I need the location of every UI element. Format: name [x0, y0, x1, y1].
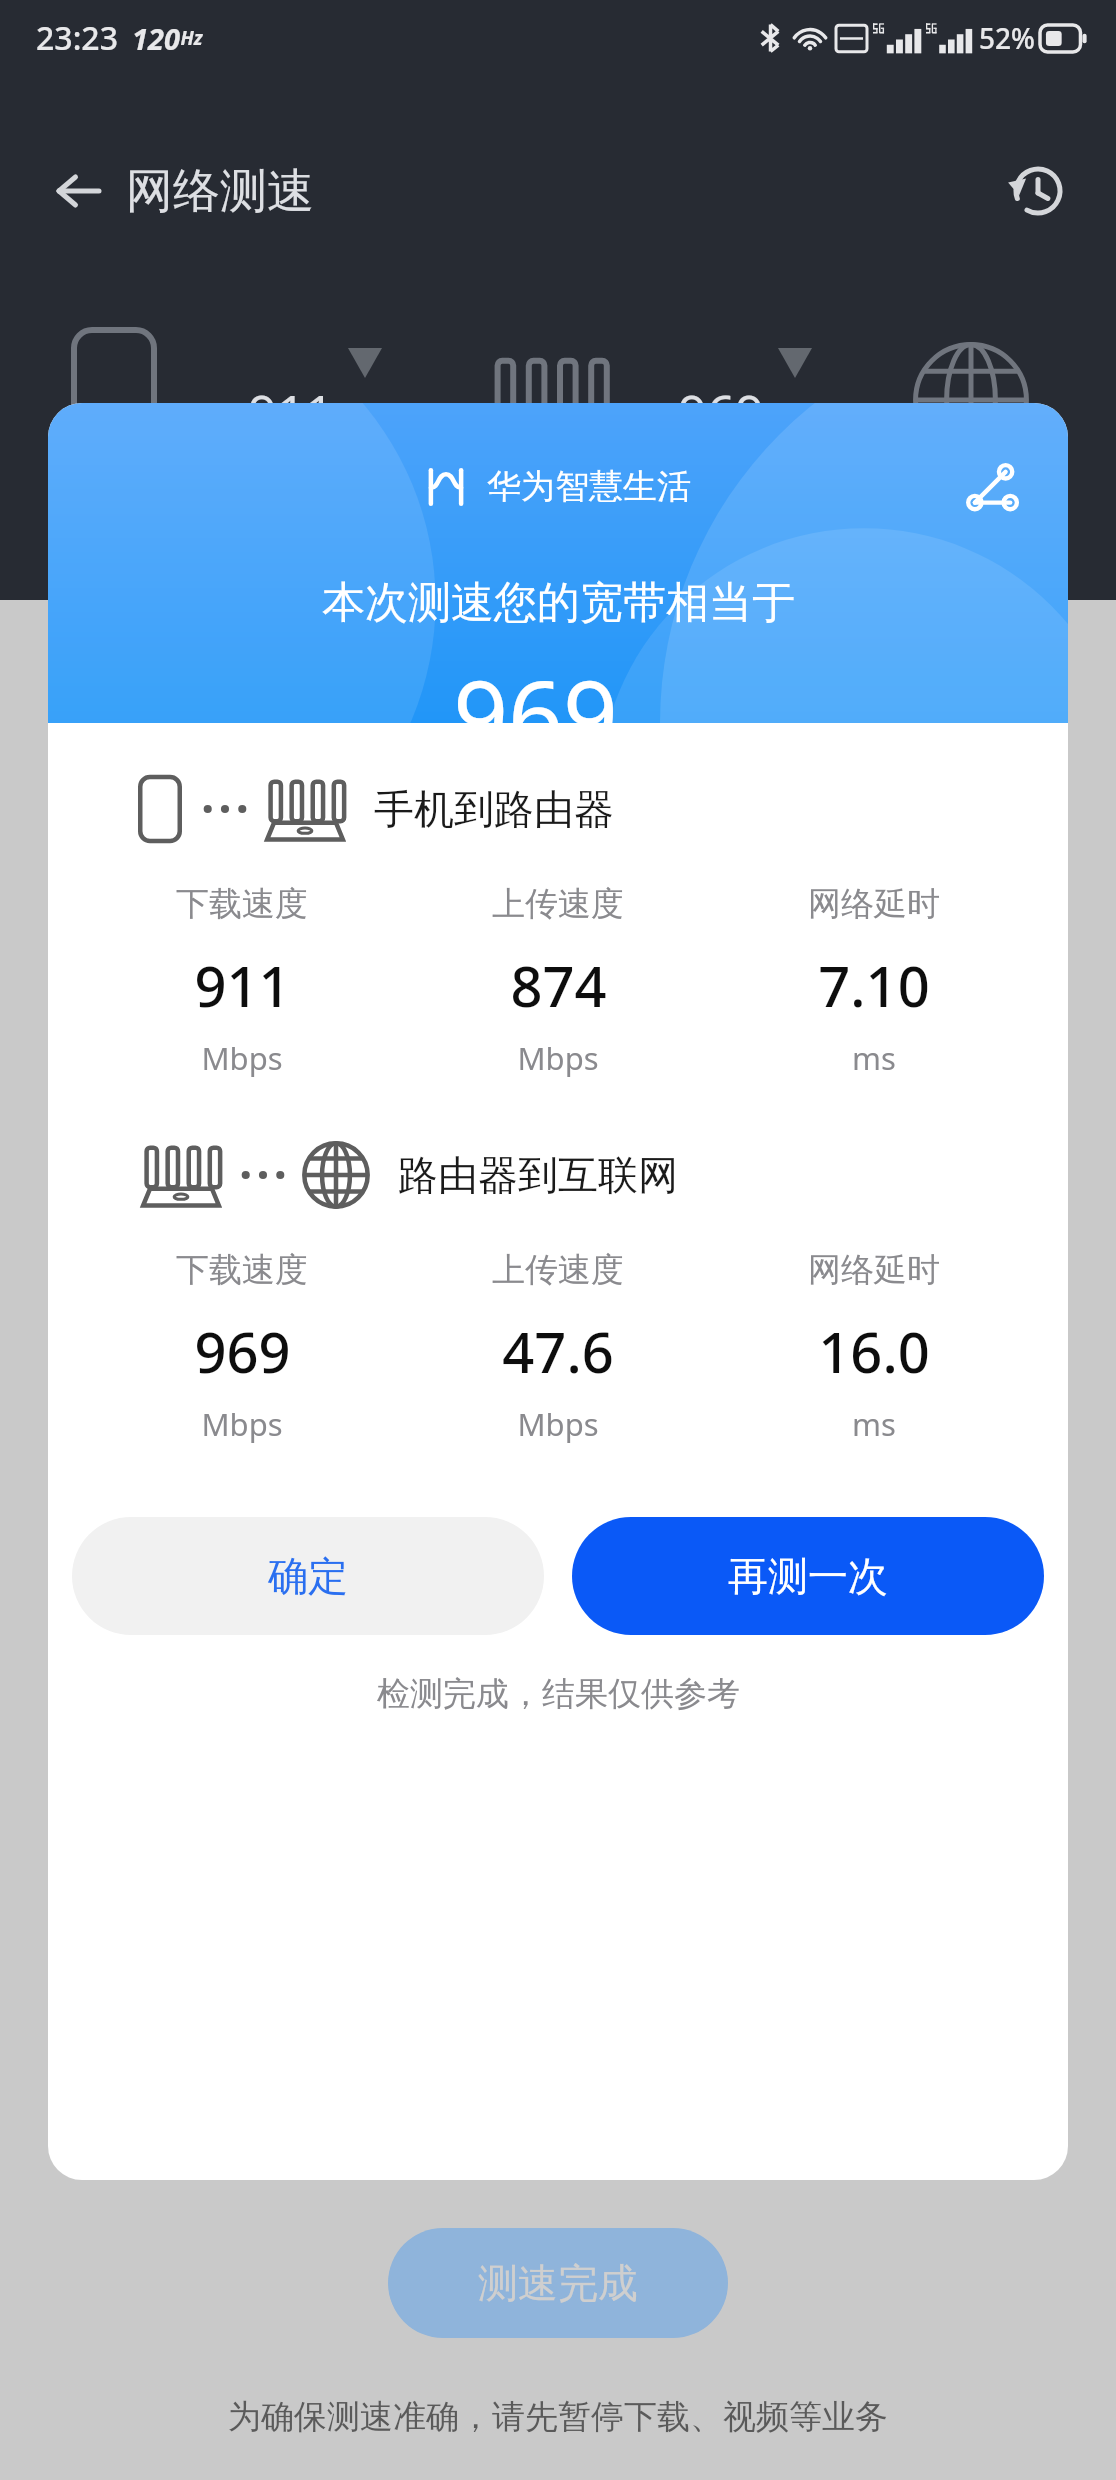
staticText: Mbps — [794, 396, 863, 431]
button[interactable]: Back — [36, 149, 120, 233]
button[interactable]: 测速完成 — [388, 2228, 728, 2338]
staticText: 120 — [132, 19, 180, 58]
staticText: 为确保测速准确，请先暂停下载、视频等业务 — [228, 2396, 888, 2438]
staticText: Mbps — [366, 396, 435, 431]
staticText: 911 — [248, 378, 334, 446]
button[interactable]: 再测一次 — [572, 1517, 1044, 1635]
staticText: ms — [852, 1037, 896, 1079]
staticText: 网络测速 — [126, 162, 314, 221]
staticText: 上传速度 — [492, 883, 624, 925]
staticText: ms — [852, 1403, 896, 1445]
staticText: 检测完成，结果仅供参考 — [377, 1673, 740, 1715]
button[interactable]: History — [996, 149, 1080, 233]
button[interactable]: 确定 — [72, 1517, 544, 1635]
staticText: Hz — [180, 25, 203, 51]
button[interactable]: Share — [948, 445, 1040, 537]
staticText: 手机到路由器 — [374, 784, 614, 834]
staticText: 测速完成 — [478, 2258, 638, 2308]
staticText: 969 — [678, 378, 764, 446]
staticText: 本次测速您的宽带相当于 — [322, 576, 795, 630]
staticText: 47.6 — [502, 1313, 614, 1389]
staticText: 911 — [194, 947, 291, 1023]
staticText: 网络延时 — [808, 1249, 940, 1291]
staticText: 969 — [194, 1313, 291, 1389]
staticText: 下载速度 — [176, 1249, 308, 1291]
staticText: 874 — [510, 947, 607, 1023]
staticText: 969 — [453, 648, 618, 779]
staticText: 再测一次 — [728, 1551, 888, 1601]
staticText: M — [628, 715, 663, 767]
staticText: 网络延时 — [808, 883, 940, 925]
staticText: 路由器到互联网 — [398, 1150, 678, 1200]
staticText: 23:23 — [36, 16, 118, 60]
staticText: Mbps — [517, 1037, 599, 1079]
staticText: 确定 — [268, 1551, 348, 1601]
staticText: 华为智慧生活 — [487, 465, 691, 508]
staticText: Mbps — [201, 1403, 283, 1445]
staticText: 下载速度 — [176, 883, 308, 925]
staticText: 52% — [979, 19, 1035, 57]
staticText: Mbps — [517, 1403, 599, 1445]
staticText: Mbps — [201, 1037, 283, 1079]
staticText: 上传速度 — [492, 1249, 624, 1291]
staticText: 7.10 — [818, 947, 930, 1023]
staticText: 16.0 — [818, 1313, 930, 1389]
